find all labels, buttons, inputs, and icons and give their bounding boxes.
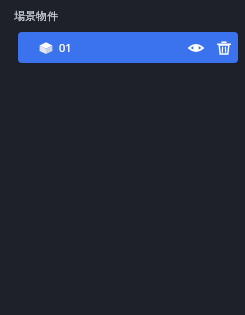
button[interactable]: 01	[18, 32, 238, 63]
staticText: 01	[59, 40, 72, 55]
button[interactable]: Delete	[213, 37, 235, 59]
button[interactable]: Toggle visibility	[185, 37, 207, 59]
staticText: 場景物件	[14, 9, 58, 23]
